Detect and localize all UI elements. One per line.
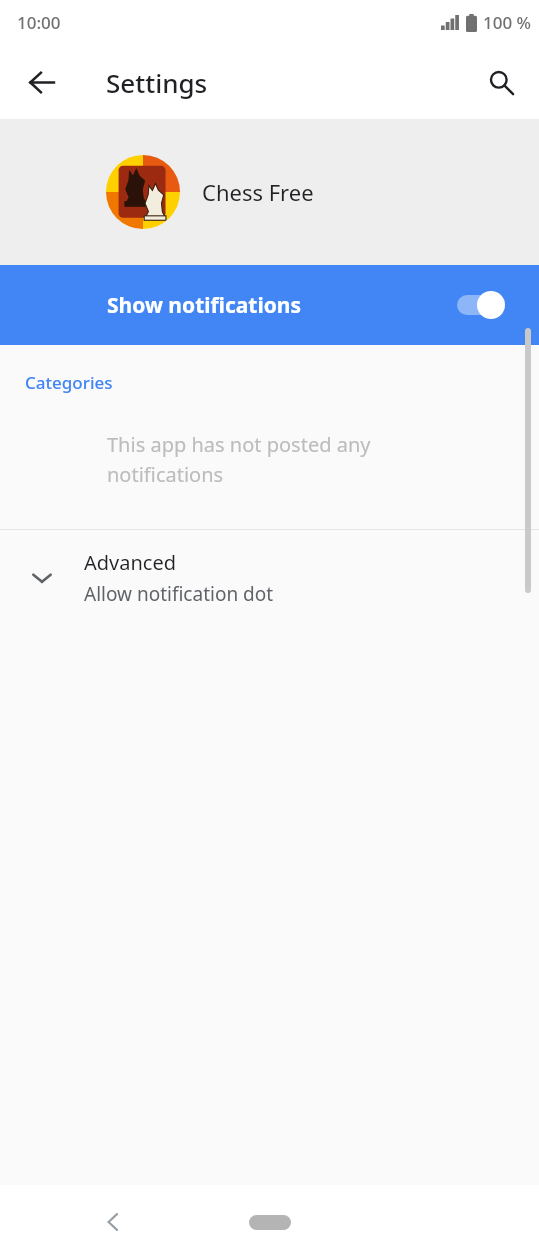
staticText: Settings bbox=[106, 65, 208, 100]
button[interactable]: Back bbox=[12, 52, 72, 112]
button[interactable]: Search bbox=[471, 52, 531, 112]
staticText: Advanced bbox=[84, 549, 176, 576]
button[interactable]: Back bbox=[83, 1192, 143, 1252]
button[interactable]: Show notifications bbox=[0, 265, 539, 345]
staticText: Categories bbox=[25, 371, 113, 394]
button[interactable]: Home bbox=[235, 1204, 305, 1240]
staticText: 10:00 bbox=[17, 11, 61, 34]
button[interactable]: Chess Free bbox=[0, 119, 539, 265]
staticText: This app has not posted any notification… bbox=[107, 431, 469, 488]
button[interactable]: Advanced bbox=[0, 530, 539, 626]
staticText: 100 % bbox=[483, 11, 532, 34]
staticText: Show notifications bbox=[107, 291, 302, 320]
staticText: Allow notification dot bbox=[84, 581, 274, 607]
staticText: Chess Free bbox=[202, 177, 314, 207]
